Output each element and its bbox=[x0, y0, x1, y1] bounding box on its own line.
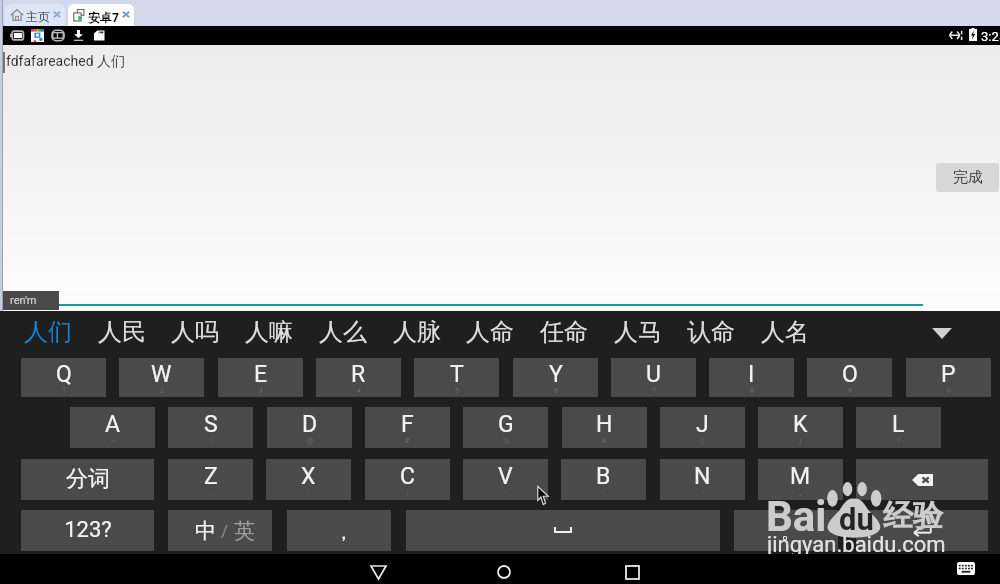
staticText: R bbox=[351, 361, 366, 388]
staticText: 1 bbox=[62, 387, 66, 395]
staticText: Y bbox=[549, 361, 563, 388]
button[interactable]: Backspace bbox=[856, 459, 988, 500]
button[interactable]: B bbox=[561, 459, 646, 500]
staticText: P bbox=[941, 361, 956, 388]
button[interactable]: Home bbox=[484, 554, 524, 584]
button[interactable]: 人们 bbox=[24, 311, 86, 357]
staticText: du bbox=[839, 501, 874, 537]
button[interactable]: Q bbox=[21, 358, 106, 397]
button[interactable]: Comma bbox=[287, 510, 391, 551]
staticText: Z bbox=[204, 463, 218, 490]
button[interactable]: Y bbox=[513, 358, 598, 397]
button[interactable]: J bbox=[660, 407, 745, 448]
staticText: 中 bbox=[195, 518, 216, 544]
button[interactable]: 分词 bbox=[21, 459, 154, 500]
button[interactable]: 123? bbox=[21, 510, 154, 551]
staticText: ? bbox=[897, 437, 901, 445]
staticText: ren'm bbox=[10, 294, 37, 307]
staticText: 人命 bbox=[466, 317, 514, 347]
button[interactable]: I bbox=[709, 358, 794, 397]
button[interactable]: Apps bbox=[31, 29, 44, 42]
button[interactable]: Window bbox=[51, 30, 65, 41]
staticText: 2 bbox=[160, 387, 164, 395]
staticText: " bbox=[602, 489, 605, 497]
staticText: 8 bbox=[750, 387, 754, 395]
button[interactable]: M bbox=[758, 459, 843, 500]
staticText: 人么 bbox=[319, 317, 367, 347]
button[interactable]: More candidates bbox=[922, 316, 962, 350]
button[interactable]: Recents bbox=[612, 554, 652, 584]
button[interactable]: 人吗 bbox=[171, 311, 233, 357]
button[interactable]: 人马 bbox=[614, 311, 676, 357]
button[interactable]: 人名 bbox=[761, 311, 823, 357]
button[interactable]: R bbox=[316, 358, 401, 397]
button[interactable]: P bbox=[906, 358, 991, 397]
staticText: 6 bbox=[554, 387, 558, 395]
staticText: 人们 bbox=[24, 317, 72, 347]
staticText: Bai bbox=[766, 492, 827, 541]
button[interactable]: 安卓7 bbox=[68, 4, 134, 26]
staticText: fdfafareached 人们 bbox=[6, 53, 126, 71]
staticText: @ bbox=[307, 437, 314, 445]
button[interactable]: 人嘛 bbox=[245, 311, 307, 357]
button[interactable]: 人民 bbox=[98, 311, 160, 357]
button[interactable]: 人么 bbox=[319, 311, 381, 357]
button[interactable]: F bbox=[365, 407, 450, 448]
button[interactable]: Chinese / English bbox=[168, 510, 272, 551]
button[interactable]: 完成 bbox=[936, 163, 999, 192]
staticText: O bbox=[842, 361, 858, 388]
button[interactable]: S bbox=[168, 407, 253, 448]
staticText: ' bbox=[505, 489, 507, 497]
staticText: G bbox=[498, 411, 514, 438]
staticText: 3:25 bbox=[981, 29, 1000, 44]
staticText: 完成 bbox=[953, 168, 983, 187]
button[interactable]: N bbox=[660, 459, 745, 500]
staticText: E bbox=[254, 361, 268, 388]
button[interactable]: U bbox=[611, 358, 696, 397]
button[interactable]: Back bbox=[358, 554, 398, 584]
button[interactable]: W bbox=[119, 358, 204, 397]
staticText: W bbox=[151, 361, 172, 388]
button[interactable]: Enter bbox=[856, 510, 988, 551]
staticText: X bbox=[301, 463, 316, 490]
staticText: 分词 bbox=[66, 465, 110, 493]
button[interactable]: K bbox=[758, 407, 843, 448]
staticText: 0 bbox=[947, 387, 951, 395]
other: Battery charging bbox=[969, 28, 977, 41]
staticText: ; bbox=[407, 489, 409, 497]
button[interactable]: T bbox=[414, 358, 499, 397]
button[interactable]: C bbox=[365, 459, 450, 500]
staticText: M bbox=[790, 463, 811, 490]
button[interactable]: Switch keyboard bbox=[954, 559, 978, 578]
staticText: U bbox=[646, 361, 661, 388]
button[interactable]: Device bbox=[10, 30, 24, 41]
button[interactable]: Download bbox=[72, 30, 85, 41]
staticText: N bbox=[694, 463, 711, 490]
button[interactable]: O bbox=[807, 358, 892, 397]
button[interactable]: Space bbox=[406, 510, 720, 551]
button[interactable]: ren'm bbox=[3, 291, 59, 310]
staticText: 7 bbox=[652, 387, 656, 395]
staticText: 人民 bbox=[98, 317, 146, 347]
button[interactable]: G bbox=[463, 407, 548, 448]
button[interactable]: D bbox=[267, 407, 352, 448]
button[interactable]: Period bbox=[734, 510, 838, 551]
button[interactable]: 主页 bbox=[5, 4, 65, 26]
button[interactable]: L bbox=[856, 407, 941, 448]
button[interactable]: H bbox=[562, 407, 647, 448]
staticText: 人名 bbox=[761, 317, 809, 347]
staticText: A bbox=[105, 411, 121, 438]
staticText: 3 bbox=[259, 387, 263, 395]
button[interactable]: Z bbox=[168, 459, 253, 500]
button[interactable]: 人命 bbox=[466, 311, 528, 357]
button[interactable]: 任命 bbox=[540, 311, 602, 357]
button[interactable]: V bbox=[463, 459, 548, 500]
button[interactable]: 人脉 bbox=[393, 311, 455, 357]
button[interactable]: X bbox=[266, 459, 351, 500]
button[interactable]: A bbox=[70, 407, 155, 448]
staticText: L bbox=[892, 411, 905, 438]
button[interactable]: 认命 bbox=[687, 311, 749, 357]
button[interactable]: Files bbox=[93, 30, 105, 41]
button[interactable]: E bbox=[218, 358, 303, 397]
staticText: C bbox=[400, 463, 415, 490]
